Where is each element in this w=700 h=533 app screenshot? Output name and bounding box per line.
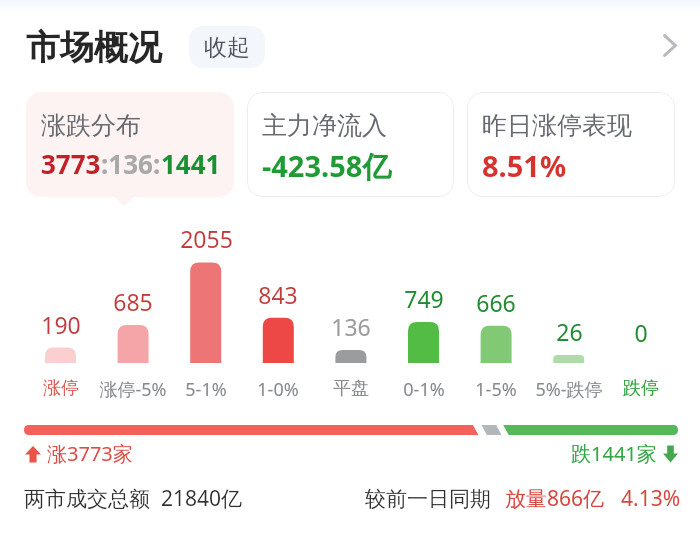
- staticText: 收起: [204, 33, 250, 62]
- staticText: 昨日涨停表现: [482, 110, 632, 141]
- staticText: 843: [258, 279, 298, 310]
- staticText: 涨停-5%: [99, 377, 167, 402]
- staticText: 1-5%: [475, 377, 517, 402]
- staticText: 涨停: [43, 377, 79, 400]
- staticText: 平盘: [333, 377, 369, 400]
- staticText: 市场概况: [26, 26, 162, 69]
- button[interactable]: 跌1441家: [571, 440, 678, 467]
- staticText: 跌停: [623, 377, 659, 400]
- staticText: 涨3773家: [47, 440, 133, 467]
- staticText: 5%-跌停: [535, 377, 603, 402]
- staticText: 4.13%: [621, 484, 681, 513]
- button[interactable]: 涨3773家: [25, 440, 133, 467]
- staticText: 190: [41, 309, 81, 340]
- staticText: 两市成交总额 21840亿: [24, 484, 242, 513]
- staticText: 2055: [180, 223, 233, 254]
- staticText: 跌1441家: [571, 440, 657, 467]
- staticText: :136:: [101, 146, 161, 181]
- staticText: 0-1%: [403, 377, 445, 402]
- staticText: 3773: [41, 146, 101, 181]
- staticText: 涨跌分布: [41, 110, 141, 141]
- button[interactable]: 涨跌分布: [26, 92, 234, 197]
- button[interactable]: 主力净流入: [247, 92, 454, 197]
- staticText: 0: [634, 317, 648, 348]
- staticText: 749: [404, 283, 444, 314]
- staticText: 放量866亿: [505, 484, 605, 513]
- staticText: -423.58亿: [262, 146, 392, 186]
- staticText: 685: [113, 286, 153, 317]
- button[interactable]: 市场概况: [26, 26, 162, 69]
- button[interactable]: 两市成交总额 21840亿: [24, 484, 242, 513]
- button[interactable]: 较前一日同期: [365, 484, 681, 513]
- staticText: 1441: [161, 146, 221, 181]
- staticText: 主力净流入: [262, 110, 387, 141]
- button[interactable]: 收起: [189, 26, 265, 68]
- staticText: 1-0%: [257, 377, 299, 402]
- staticText: 26: [556, 316, 583, 347]
- staticText: 136: [331, 311, 371, 342]
- button[interactable]: 昨日涨停表现: [467, 92, 675, 197]
- staticText: 8.51%: [482, 146, 567, 185]
- staticText: 较前一日同期: [365, 486, 491, 512]
- staticText: 5-1%: [185, 377, 227, 402]
- button[interactable]: 查看更多: [646, 22, 696, 72]
- staticText: 666: [476, 287, 516, 318]
